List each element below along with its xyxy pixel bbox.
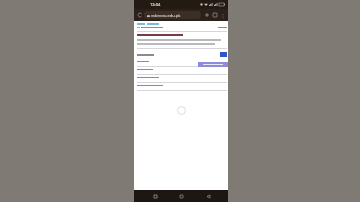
button[interactable]: [137, 75, 227, 83]
button[interactable]: [137, 59, 227, 67]
button[interactable]: [198, 62, 228, 67]
button[interactable]: vsbnr.vu.edu.pk: [144, 11, 201, 19]
button[interactable]: Reload page: [136, 11, 144, 19]
button[interactable]: Recent apps: [149, 190, 161, 202]
staticText: vsbnr.vu.edu.pk: [151, 13, 181, 18]
staticText: 12:04: [150, 2, 161, 7]
button[interactable]: [137, 67, 227, 75]
button[interactable]: More options: [219, 12, 226, 19]
button[interactable]: [137, 83, 227, 91]
button[interactable]: Home: [175, 190, 187, 202]
button[interactable]: New tab: [203, 11, 211, 19]
button[interactable]: Tabs: [211, 11, 219, 19]
button[interactable]: Back: [202, 190, 214, 202]
